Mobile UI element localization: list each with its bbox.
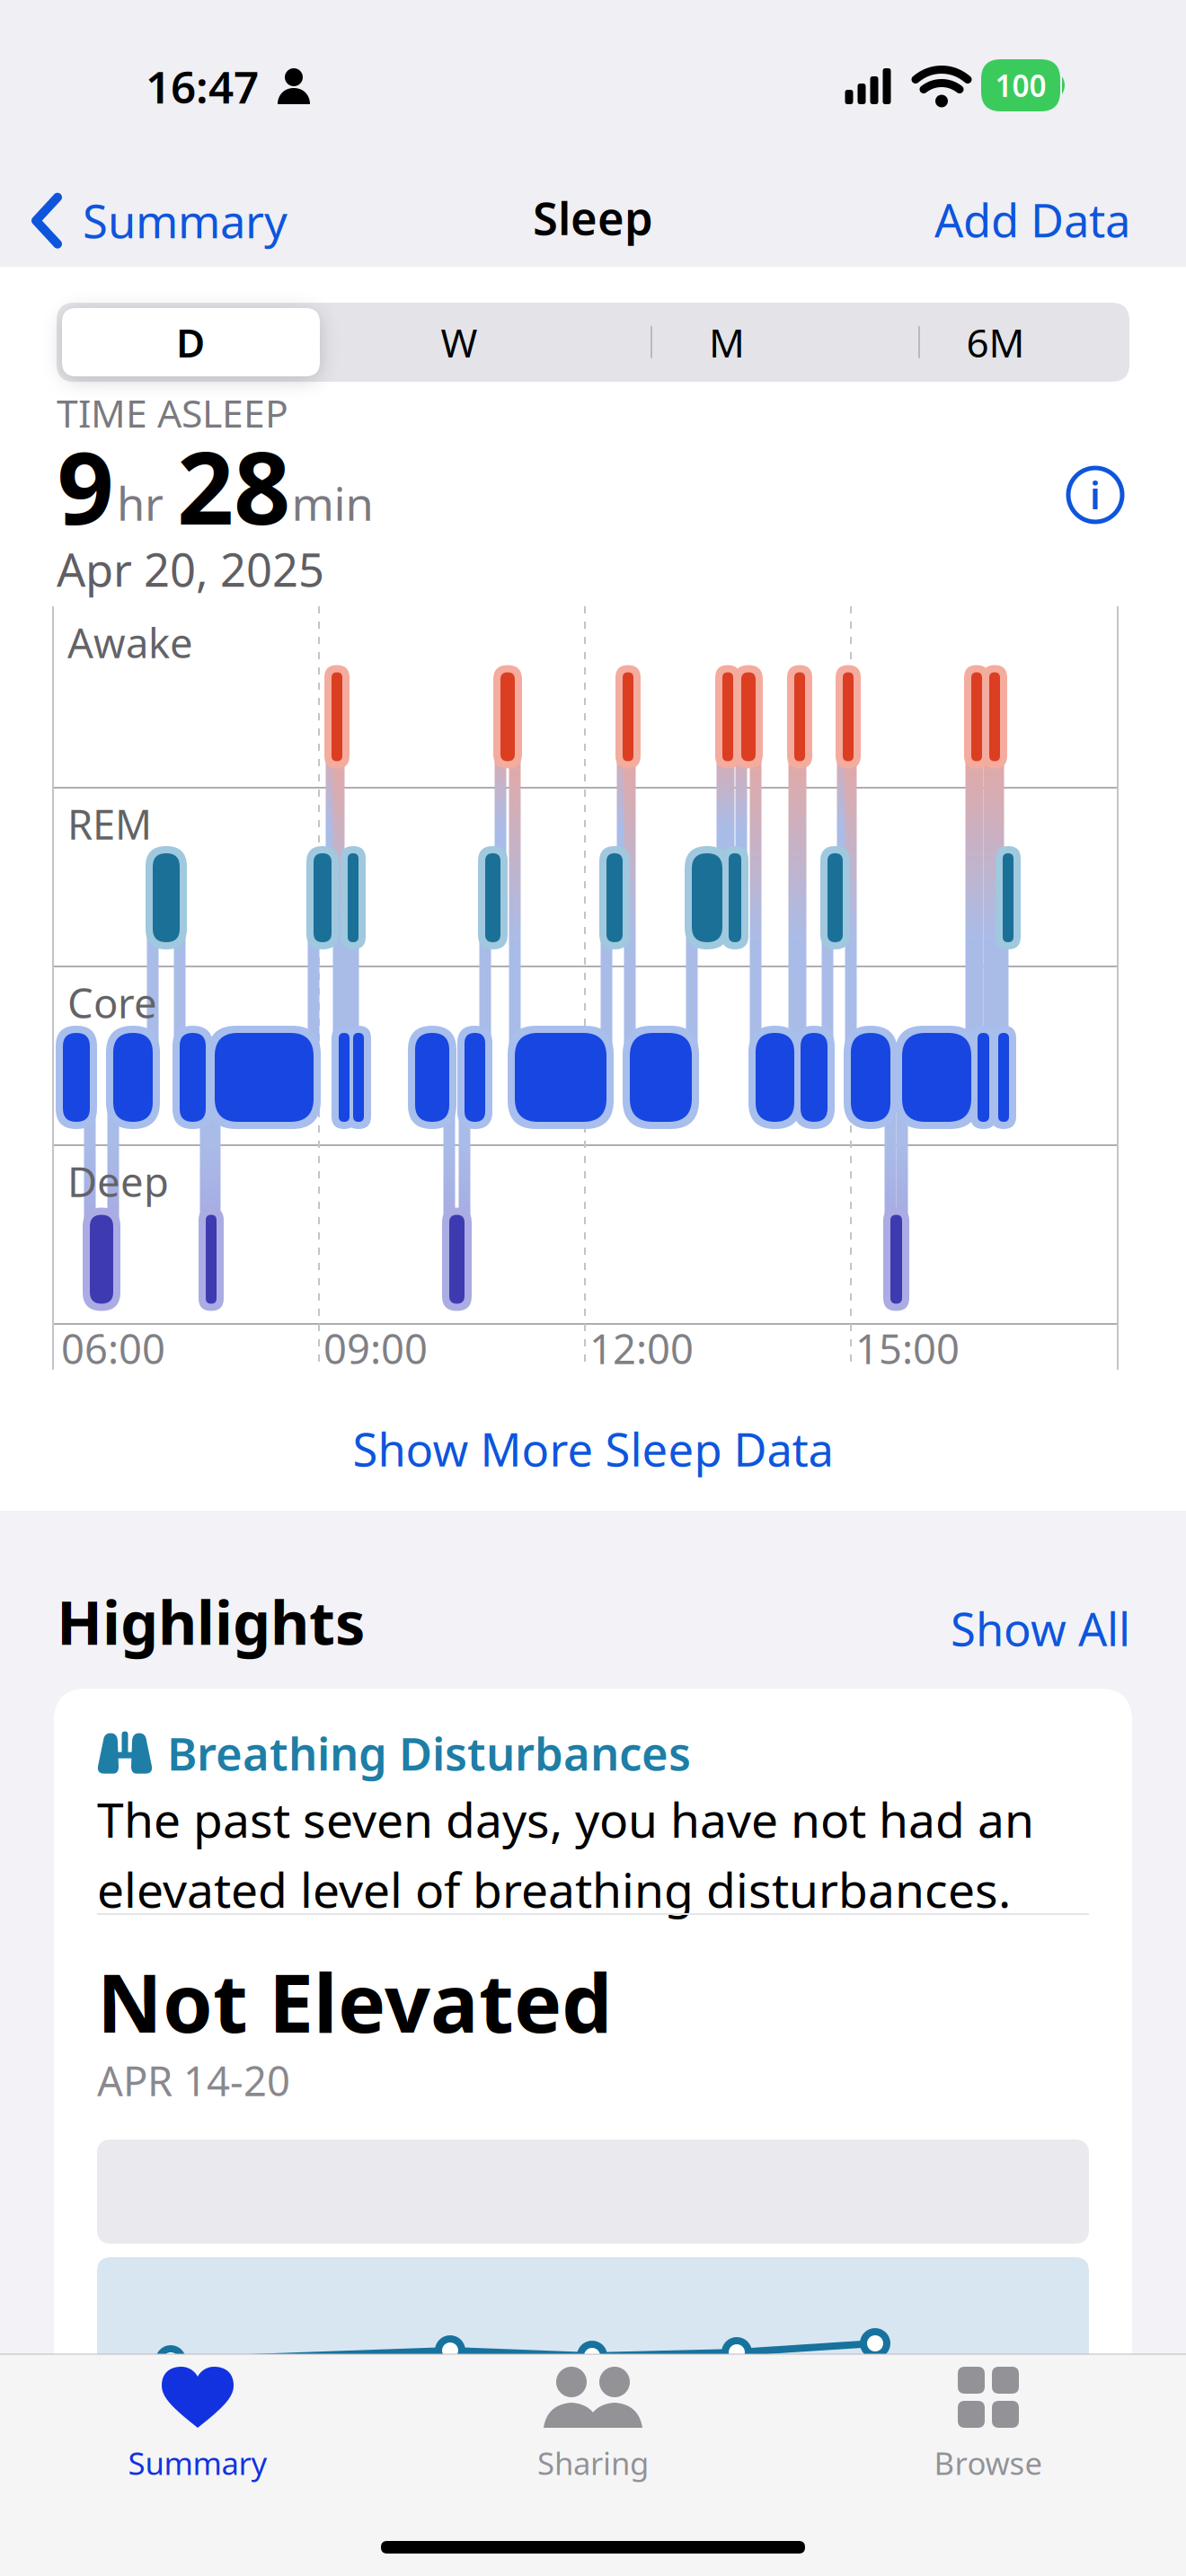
button[interactable]: Browse xyxy=(934,2367,1043,2483)
staticText: M xyxy=(709,316,745,368)
button[interactable]: Breathing Disturbances xyxy=(54,1689,1132,2576)
staticText: Apr 20, 2025 xyxy=(57,539,324,599)
staticText: 9 xyxy=(57,420,114,552)
staticText: Core xyxy=(67,975,157,1030)
staticText: The past seven days, you have not had an xyxy=(97,1787,1034,1851)
staticText: 100 xyxy=(995,65,1046,105)
staticText: 09:00 xyxy=(323,1321,428,1375)
staticText: i xyxy=(1090,470,1101,520)
staticText: Deep xyxy=(67,1154,169,1208)
staticText: REM xyxy=(67,797,152,851)
staticText: elevated level of breathing disturbances… xyxy=(97,1857,1011,1921)
staticText: hr xyxy=(117,473,164,533)
staticText: min xyxy=(292,473,373,533)
button[interactable]: Summary xyxy=(128,2367,267,2483)
button[interactable]: M xyxy=(597,303,857,382)
staticText: Sharing xyxy=(537,2442,649,2483)
staticText: APR 14-20 xyxy=(97,2053,290,2107)
staticText: Sleep xyxy=(533,187,653,248)
staticText: Add Data xyxy=(934,190,1130,250)
staticText: Summary xyxy=(128,2442,267,2483)
button[interactable]: More info xyxy=(1068,468,1122,522)
staticText: Browse xyxy=(934,2442,1043,2483)
staticText: Breathing Disturbances xyxy=(167,1723,691,1783)
staticText: Show More Sleep Data xyxy=(353,1419,833,1479)
staticText: Not Elevated xyxy=(97,1948,612,2055)
button[interactable]: D xyxy=(60,303,321,382)
button[interactable]: Show More Sleep Data xyxy=(353,1419,833,1479)
staticText: Awake xyxy=(67,615,193,669)
staticText: TIME ASLEEP xyxy=(57,387,288,438)
staticText: 28 xyxy=(177,420,290,552)
staticText: Show All xyxy=(951,1598,1130,1659)
staticText: 06:00 xyxy=(61,1321,165,1375)
staticText: 16:47 xyxy=(146,57,259,116)
button[interactable]: Sharing xyxy=(537,2367,649,2483)
button[interactable]: Show All xyxy=(951,1598,1130,1659)
staticText: 15:00 xyxy=(855,1321,960,1375)
staticText: D xyxy=(176,316,205,368)
button[interactable]: 6M xyxy=(865,303,1126,382)
staticText: W xyxy=(441,316,478,368)
staticText: Highlights xyxy=(57,1582,365,1661)
staticText: 6M xyxy=(966,316,1025,368)
staticText: 12:00 xyxy=(589,1321,694,1375)
button[interactable]: W xyxy=(329,303,589,382)
staticText: Summary xyxy=(83,190,288,251)
